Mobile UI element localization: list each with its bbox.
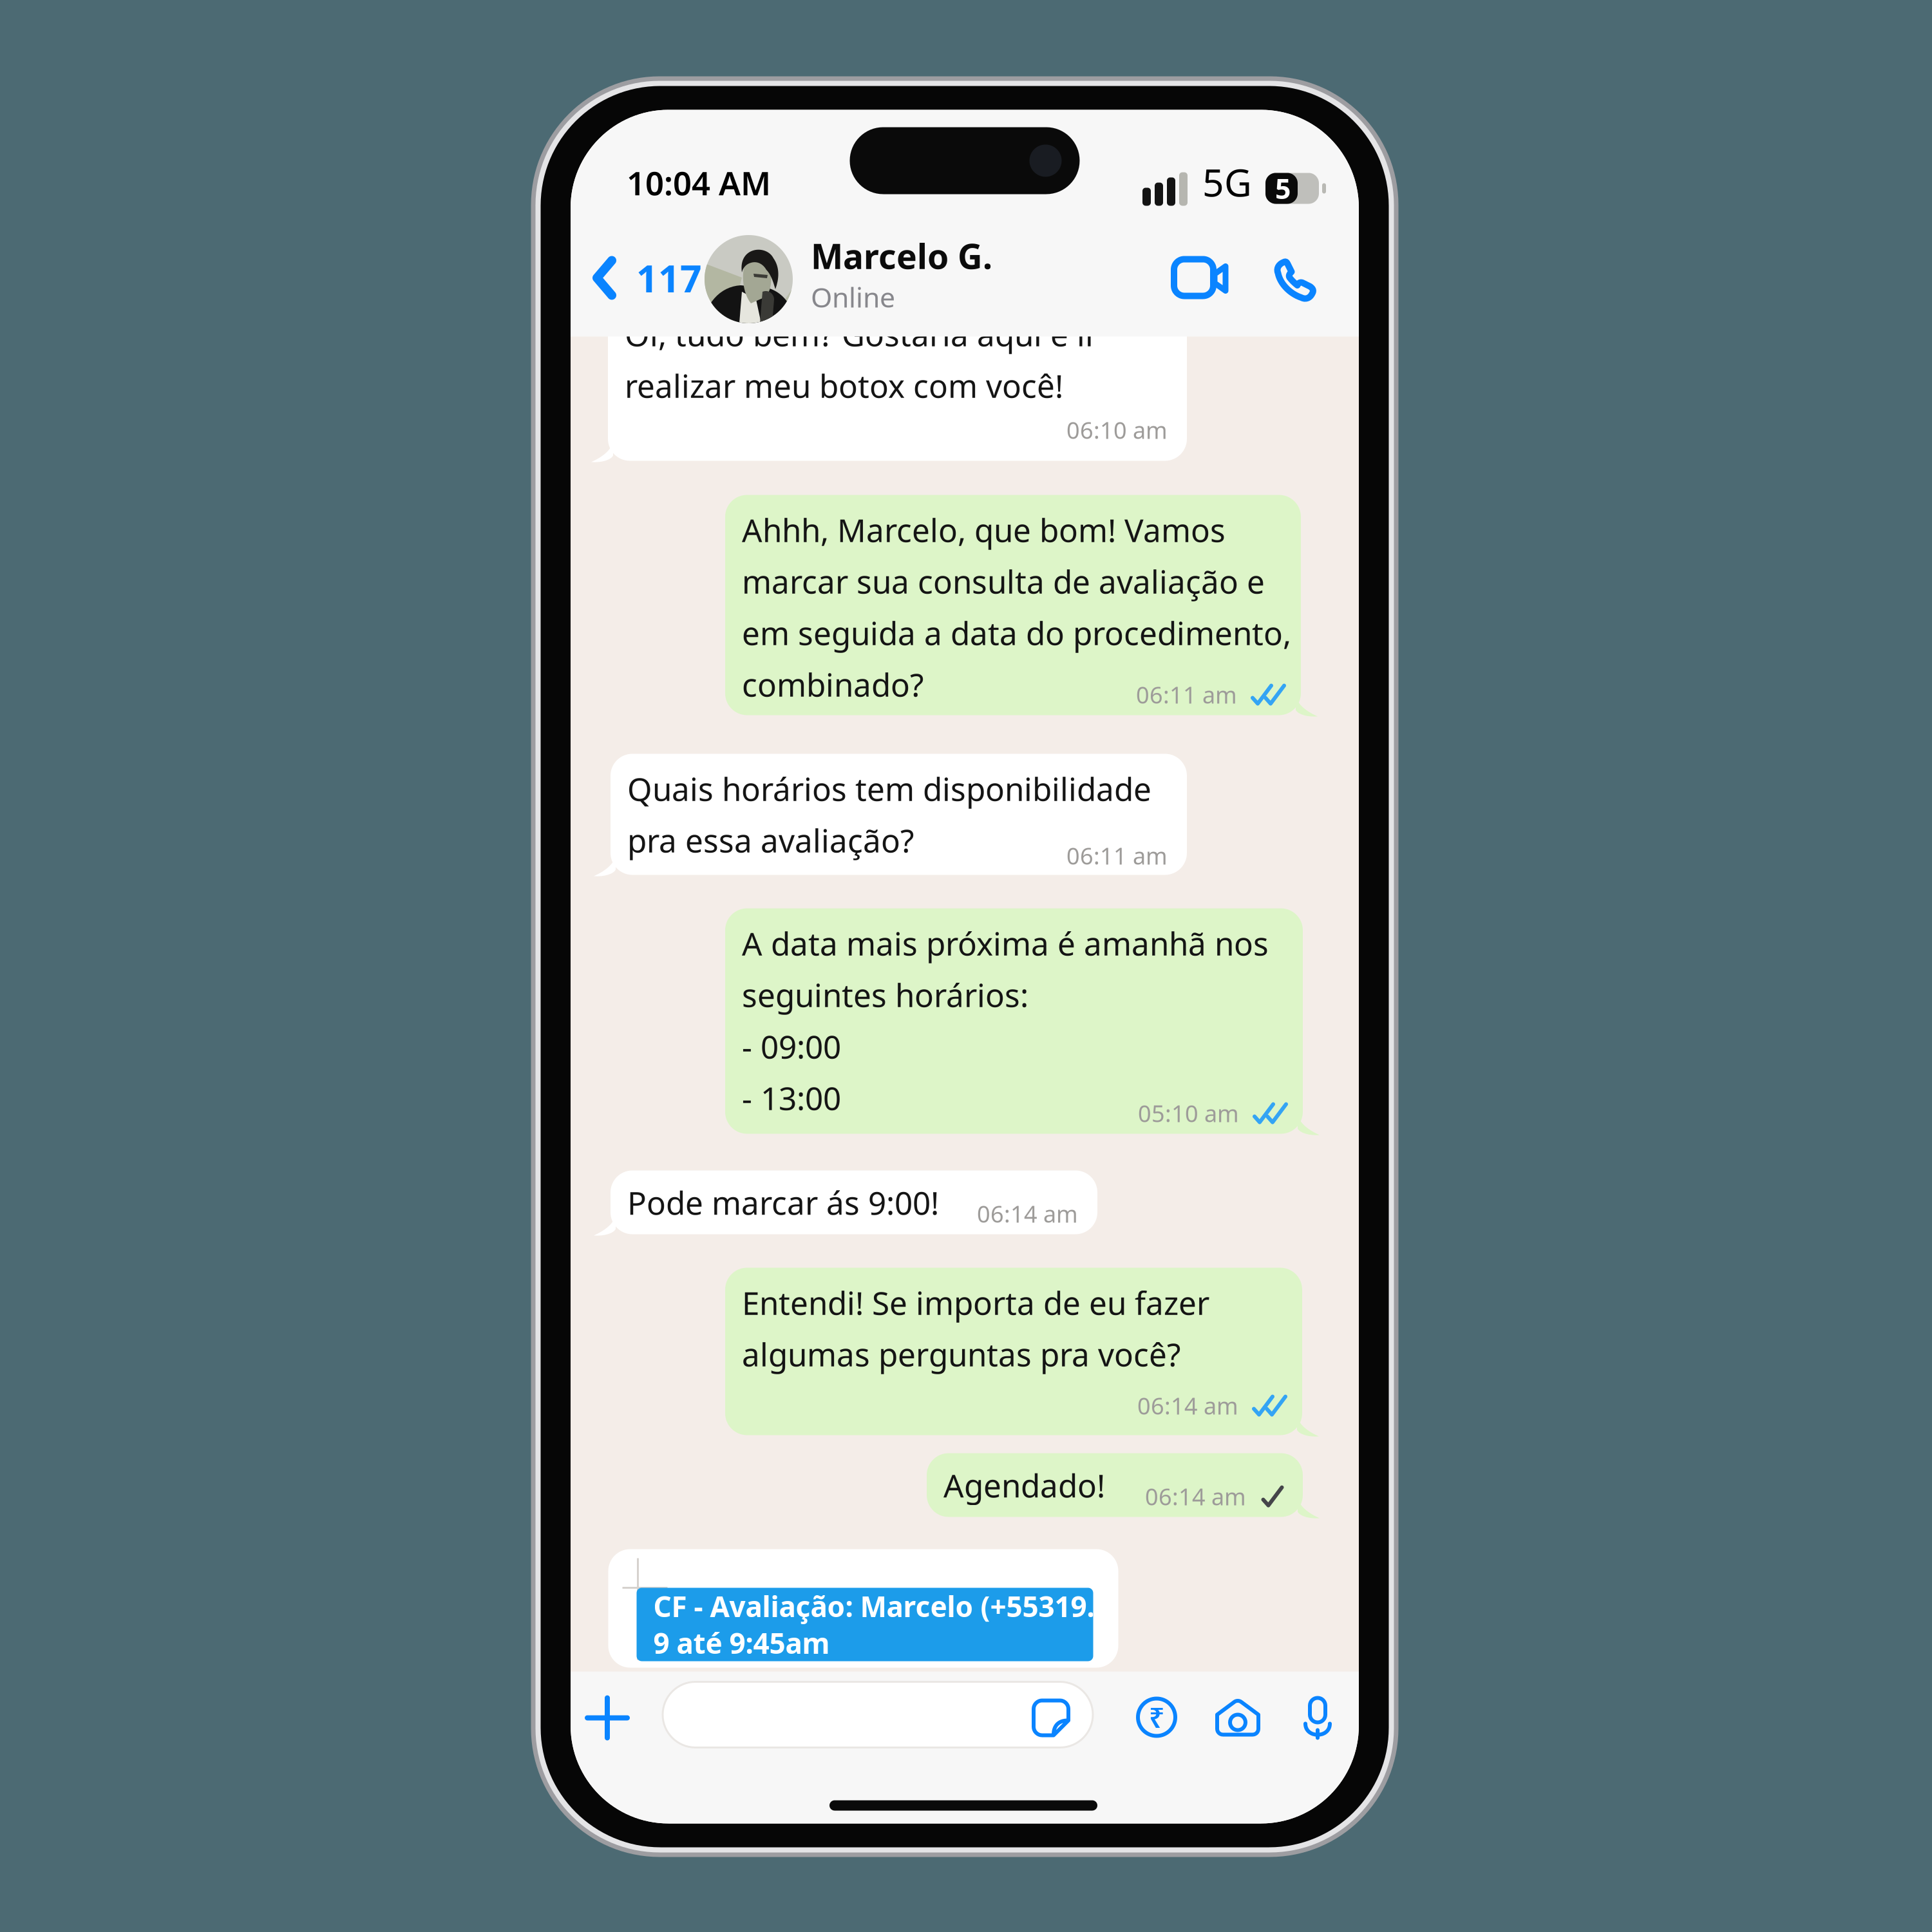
- button[interactable]: Marcelo G.: [705, 230, 1025, 328]
- staticText: marcar sua consulta de avaliação e: [742, 560, 1265, 602]
- button[interactable]: Payments: [1128, 1688, 1186, 1746]
- staticText: 05:10 am: [1138, 1098, 1239, 1129]
- staticText: realizar meu botox com você!: [625, 364, 1063, 406]
- staticText: Agendado!: [943, 1464, 1105, 1506]
- staticText: 06:14 am: [1137, 1390, 1238, 1421]
- button[interactable]: Attach: [574, 1685, 640, 1751]
- staticText: 117: [636, 253, 702, 303]
- staticText: pra essa avaliação?: [627, 819, 914, 861]
- staticText: 06:10 am: [1066, 415, 1168, 445]
- staticText: 9 até 9:45am: [653, 1624, 830, 1662]
- staticText: Oi, tudo bem? Gostaria aqui e ir: [625, 313, 1098, 355]
- staticText: em seguida a data do procedimento,: [742, 612, 1291, 654]
- staticText: 06:11 am: [1136, 679, 1237, 710]
- staticText: CF - Avaliação: Marcelo (+55319...: [653, 1587, 1110, 1625]
- staticText: Ahhh, Marcelo, que bom! Vamos: [742, 509, 1226, 551]
- staticText: Online: [811, 279, 895, 315]
- staticText: Pode marcar ás 9:00!: [627, 1181, 939, 1223]
- staticText: seguintes horários:: [742, 974, 1028, 1016]
- button[interactable]: Video call: [1155, 240, 1249, 316]
- staticText: - 13:00: [742, 1077, 841, 1119]
- staticText: 06:14 am: [1145, 1481, 1246, 1512]
- staticText: ₹: [1149, 1699, 1164, 1736]
- staticText: 5G: [1202, 157, 1252, 207]
- staticText: 06:14 am: [977, 1198, 1078, 1229]
- staticText: Quais horários tem disponibilidade: [627, 767, 1151, 810]
- staticText: 06:11 am: [1066, 840, 1168, 871]
- staticText: combinado?: [742, 663, 923, 705]
- staticText: 5: [1275, 170, 1291, 207]
- staticText: 10:04 AM: [627, 161, 771, 204]
- button[interactable]: Stickers: [1021, 1688, 1081, 1748]
- button[interactable]: Camera: [1205, 1689, 1271, 1747]
- button[interactable]: Voice call: [1254, 236, 1338, 322]
- staticText: Entendi! Se importa de eu fazer: [742, 1281, 1209, 1324]
- staticText: - 09:00: [742, 1025, 841, 1067]
- button[interactable]: Type a message: [663, 1682, 1093, 1747]
- staticText: Marcelo G.: [811, 233, 992, 279]
- button[interactable]: Voice message: [1292, 1686, 1343, 1749]
- staticText: algumas perguntas pra você?: [742, 1333, 1180, 1375]
- staticText: A data mais próxima é amanhã nos: [742, 922, 1269, 964]
- button[interactable]: 117: [581, 229, 712, 327]
